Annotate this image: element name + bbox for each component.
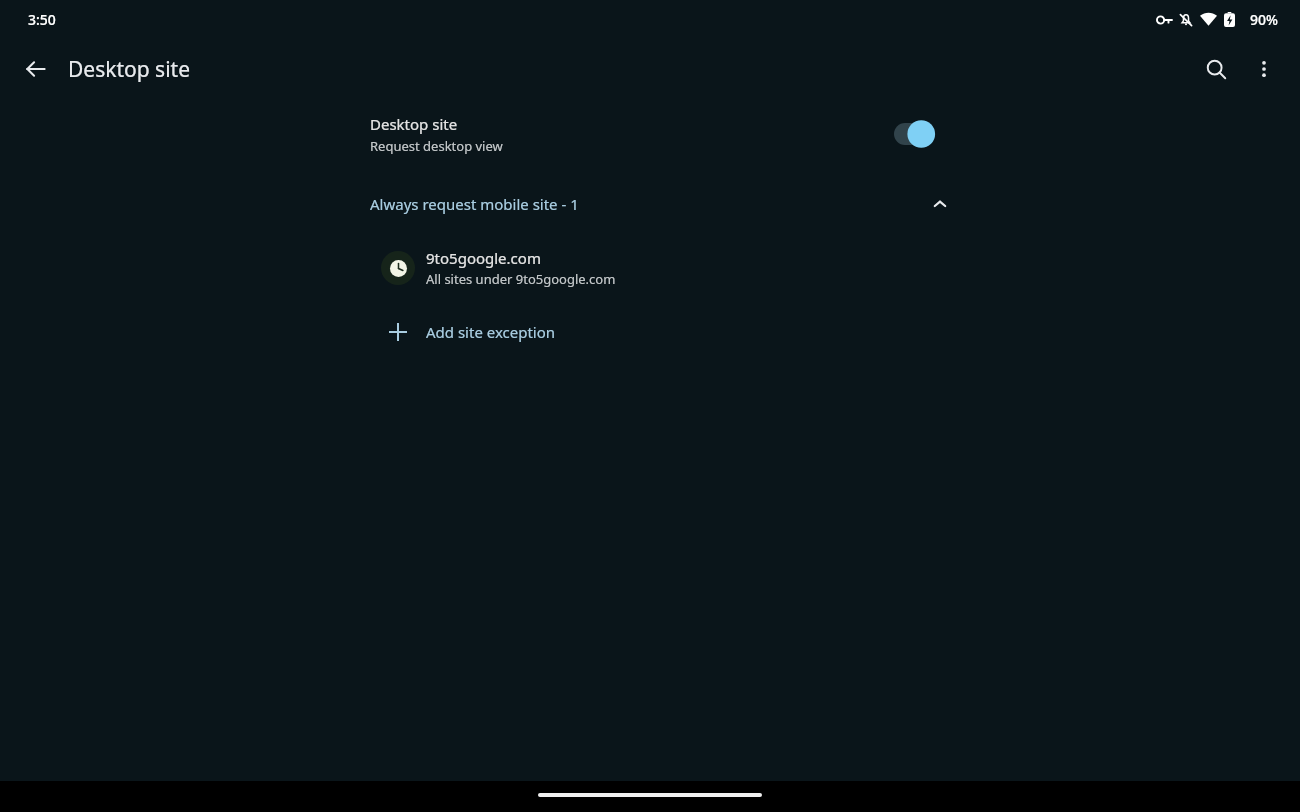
staticText: 9to5google.com [426, 248, 541, 268]
button[interactable]: Search [1192, 45, 1240, 93]
button[interactable]: Desktop site [370, 100, 940, 168]
button[interactable]: More options [1240, 45, 1288, 93]
staticText: Desktop site [370, 114, 458, 134]
other: Collapse [920, 186, 960, 222]
button[interactable]: 9to5google.com [370, 238, 940, 298]
button[interactable]: Back [12, 45, 60, 93]
staticText: 3:50 [28, 10, 56, 29]
staticText: All sites under 9to5google.com [426, 270, 616, 288]
staticText: Always request mobile site - 1 [370, 194, 900, 214]
button[interactable]: Desktop site toggle [888, 117, 940, 151]
staticText: Request desktop view [370, 137, 503, 155]
staticText: 90% [1250, 10, 1278, 29]
button[interactable]: Always request mobile site - 1 [370, 186, 940, 222]
staticText: Desktop site [68, 55, 191, 84]
staticText: Add site exception [426, 322, 556, 342]
button[interactable]: Add site exception [370, 310, 940, 354]
